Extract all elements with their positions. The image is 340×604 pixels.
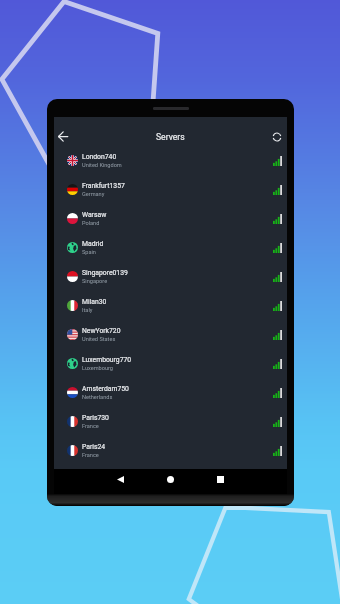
button[interactable]: Luxembourg770 [54,349,287,378]
button[interactable]: Madrid [54,233,287,262]
button[interactable]: London740 [54,146,287,175]
staticText: Paris730 [82,414,109,422]
staticText: London740 [82,153,117,161]
staticText: United Kingdom [82,162,122,169]
staticText: Luxembourg770 [82,356,132,364]
staticText: Paris24 [82,443,106,451]
staticText: Netherlands [82,394,113,401]
button[interactable]: Home [162,471,178,487]
staticText: Amsterdam750 [82,385,129,393]
staticText: Spain [82,249,96,256]
button[interactable]: Back [112,471,128,487]
staticText: Milan30 [82,298,107,306]
button[interactable]: Amsterdam750 [54,378,287,407]
button[interactable]: Singapore0139 [54,262,287,291]
staticText: Singapore [82,278,108,285]
staticText: United States [82,336,116,343]
button[interactable]: Warsaw [54,204,287,233]
button[interactable]: Recents [212,471,228,487]
staticText: Luxembourg [82,365,113,372]
staticText: Singapore0139 [82,269,128,277]
staticText: Frankfurt1357 [82,182,125,190]
staticText: Warsaw [82,211,107,219]
button[interactable]: NewYork720 [54,320,287,349]
button[interactable]: Paris24 [54,436,287,465]
button[interactable]: Milan30 [54,291,287,320]
staticText: France [82,452,99,459]
button[interactable]: Paris730 [54,407,287,436]
staticText: France [82,423,99,430]
staticText: Servers [156,132,185,142]
staticText: Italy [82,307,93,314]
staticText: Germany [82,191,105,198]
button[interactable]: Refresh [267,127,287,146]
button[interactable]: Back [53,127,73,146]
staticText: NewYork720 [82,327,121,335]
staticText: Poland [82,220,100,227]
button[interactable]: Frankfurt1357 [54,175,287,204]
staticText: Madrid [82,240,104,248]
